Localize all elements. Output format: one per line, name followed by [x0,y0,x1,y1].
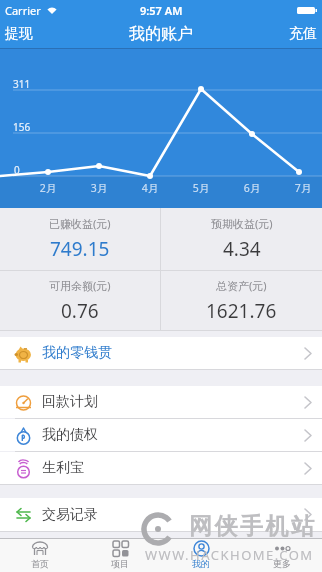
button[interactable]: 我的零钱贯 [0,337,322,369]
staticText: 7月 [288,181,318,195]
button[interactable]: 总资产(元) [161,271,322,330]
button[interactable]: 我的 [160,539,241,572]
staticText: 预期收益(元) [211,216,273,231]
button[interactable]: 我的债权 [0,419,322,451]
staticText: 749.15 [50,236,110,262]
staticText: 0.76 [61,298,99,324]
staticText: WWW.HACKHOME.COM [145,546,314,564]
staticText: 项目 [111,558,129,569]
staticText: Carrier [5,3,41,18]
staticText: 我的 [192,558,210,569]
staticText: 2月 [33,181,63,195]
button[interactable]: 可用余额(元) [0,271,160,330]
staticText: 我的零钱贯 [42,344,112,362]
staticText: 0 [14,163,20,177]
staticText: 9:57 AM [140,3,183,18]
staticText: 5月 [186,181,216,195]
button[interactable]: 回款计划 [0,386,322,418]
staticText: 4.34 [223,236,261,262]
button[interactable]: 提现 [5,25,33,43]
button[interactable]: 项目 [80,539,160,572]
staticText: 更多 [273,558,291,569]
staticText: 充值 [289,25,317,43]
staticText: 156 [13,120,31,134]
staticText: 6月 [237,181,267,195]
button[interactable]: 首页 [0,539,80,572]
staticText: 提现 [5,25,33,43]
button[interactable]: 已赚收益(元) [0,208,160,270]
staticText: 网侠手机站 [189,512,317,541]
staticText: 回款计划 [42,393,98,411]
staticText: 4月 [135,181,165,195]
button[interactable]: 生利宝 [0,452,322,484]
button[interactable]: 预期收益(元) [161,208,322,270]
staticText: 1621.76 [206,298,277,324]
staticText: 已赚收益(元) [49,216,111,231]
staticText: 交易记录 [42,506,98,524]
staticText: 首页 [31,558,49,569]
staticText: 3月 [84,181,114,195]
staticText: 311 [13,77,31,91]
staticText: 我的债权 [42,426,98,444]
button[interactable]: 交易记录 [0,498,322,531]
button[interactable]: 充值 [289,25,317,43]
staticText: 我的账户 [129,24,193,44]
staticText: 可用余额(元) [49,278,111,293]
staticText: 生利宝 [42,459,84,477]
staticText: 总资产(元) [216,278,267,293]
button[interactable]: 更多 [241,539,322,572]
